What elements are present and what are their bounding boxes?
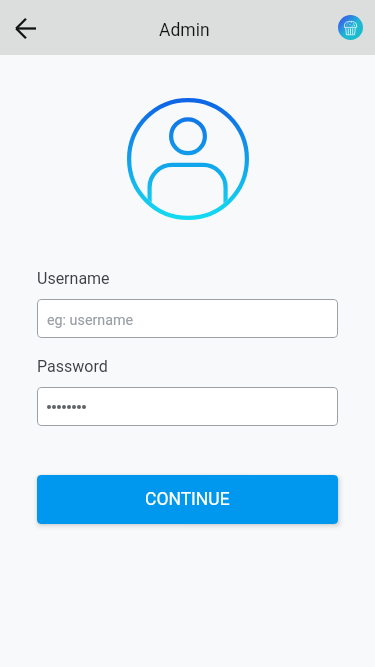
staticText: CONTINUE	[145, 489, 230, 510]
button[interactable]: Profile	[338, 15, 363, 40]
staticText: Password	[37, 357, 108, 376]
staticText: Admin	[159, 20, 210, 41]
staticText: Username	[37, 269, 110, 288]
button[interactable]: Back	[5, 8, 45, 48]
button[interactable]: eg: username	[37, 299, 338, 338]
staticText: eg: username	[47, 312, 134, 329]
button[interactable]: CONTINUE	[37, 475, 338, 524]
button[interactable]	[37, 387, 338, 426]
